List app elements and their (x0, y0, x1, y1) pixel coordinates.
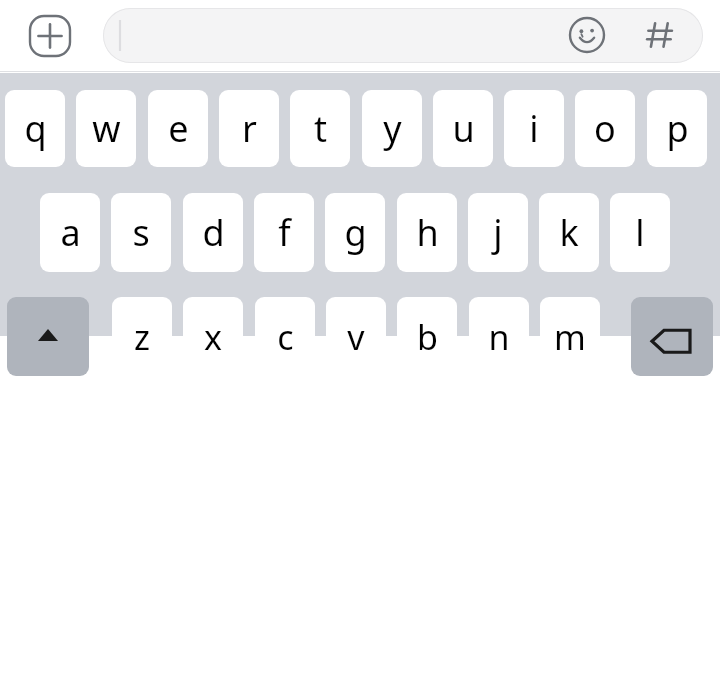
button[interactable]: l (610, 193, 670, 272)
button[interactable]: b (397, 297, 457, 376)
button[interactable]: g (325, 193, 385, 272)
staticText: a (60, 208, 81, 257)
button[interactable]: m (540, 297, 600, 376)
staticText: c (277, 314, 294, 360)
staticText: s (132, 208, 150, 257)
staticText: k (559, 208, 579, 257)
button[interactable]: s (111, 193, 171, 272)
staticText: d (202, 208, 225, 257)
button[interactable]: y (362, 90, 422, 167)
button[interactable]: v (326, 297, 386, 376)
button[interactable]: u (433, 90, 493, 167)
staticText: i (529, 104, 539, 153)
button[interactable]: x (183, 297, 243, 376)
button[interactable]: h (397, 193, 457, 272)
button[interactable]: c (255, 297, 315, 376)
staticText: j (493, 208, 503, 257)
staticText: g (344, 208, 367, 257)
staticText: x (204, 314, 222, 360)
staticText: y (383, 104, 402, 153)
button[interactable]: w (76, 90, 136, 167)
button[interactable]: d (183, 193, 243, 272)
button[interactable]: z (112, 297, 172, 376)
button[interactable]: Backspace (631, 297, 713, 376)
button[interactable]: a (40, 193, 100, 272)
staticText: f (278, 208, 291, 257)
staticText: h (416, 208, 439, 257)
button[interactable] (103, 8, 703, 63)
button[interactable]: o (575, 90, 635, 167)
button[interactable]: f (254, 193, 314, 272)
button[interactable]: Add attachment (27, 13, 73, 59)
staticText: l (635, 208, 645, 257)
staticText: u (452, 104, 475, 153)
staticText: r (242, 104, 257, 153)
staticText: e (168, 104, 189, 153)
staticText: v (347, 314, 365, 360)
staticText: z (134, 314, 150, 360)
staticText: m (554, 314, 586, 360)
button[interactable]: n (469, 297, 529, 376)
button[interactable]: r (219, 90, 279, 167)
button[interactable]: i (504, 90, 564, 167)
button[interactable]: t (290, 90, 350, 167)
staticText: w (92, 104, 121, 153)
staticText: p (666, 104, 689, 153)
staticText: q (24, 104, 47, 153)
staticText: t (314, 104, 327, 153)
staticText: b (417, 314, 438, 360)
button[interactable]: k (539, 193, 599, 272)
staticText: o (594, 104, 616, 153)
button[interactable]: e (148, 90, 208, 167)
button[interactable]: j (468, 193, 528, 272)
button[interactable]: p (647, 90, 707, 167)
button[interactable]: q (5, 90, 65, 167)
button[interactable]: Hashtag (640, 14, 682, 56)
button[interactable]: Shift (7, 297, 89, 376)
button[interactable]: Emoji (568, 16, 606, 54)
staticText: n (488, 314, 510, 360)
